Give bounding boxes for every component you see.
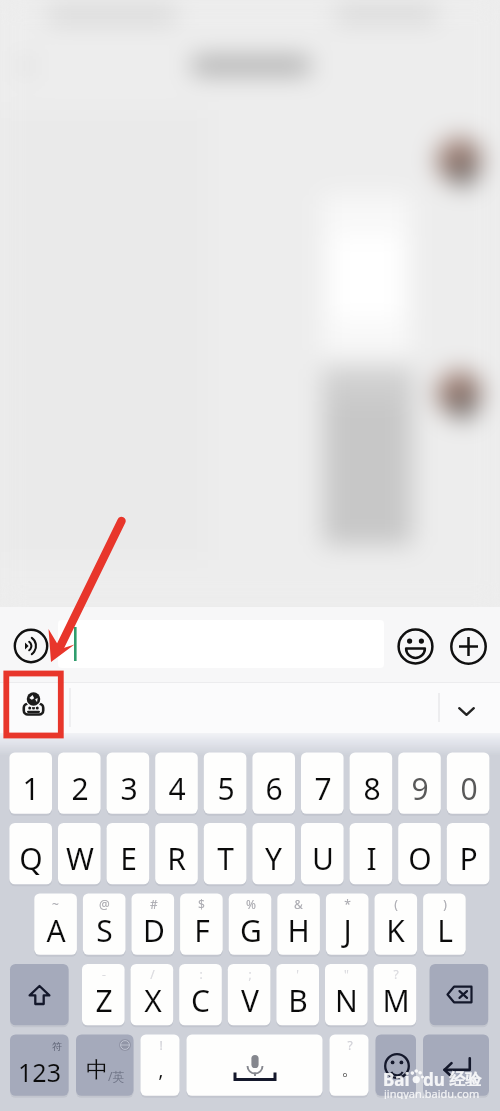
staticText: I xyxy=(366,838,377,879)
button[interactable]: 9 xyxy=(398,758,441,819)
staticText: A xyxy=(46,910,66,951)
button[interactable]: C xyxy=(179,973,222,1028)
button[interactable]: 4 xyxy=(155,758,198,819)
staticText: F xyxy=(194,910,210,951)
staticText: Bai xyxy=(383,1068,410,1086)
button[interactable]: 0 xyxy=(447,758,490,819)
button[interactable]: 8 xyxy=(350,758,393,819)
button[interactable]: P xyxy=(447,828,490,889)
button[interactable]: Chinese English toggle xyxy=(76,1045,134,1094)
staticText: : xyxy=(199,966,203,982)
staticText: R xyxy=(167,838,186,879)
button[interactable]: Voice message xyxy=(10,625,51,666)
button[interactable]: Hide keyboard xyxy=(450,695,483,728)
button[interactable]: 123 xyxy=(10,1045,69,1098)
button[interactable]: Switch input method xyxy=(17,688,49,720)
staticText: ! xyxy=(159,1037,163,1053)
staticText: Y xyxy=(265,838,282,879)
staticText: ~ xyxy=(52,896,59,912)
staticText: 3 xyxy=(120,768,138,809)
staticText: Z xyxy=(95,980,113,1021)
staticText: ' xyxy=(296,966,299,982)
staticText: Q xyxy=(19,838,43,879)
button[interactable]: 6 xyxy=(252,758,295,819)
button[interactable]: F xyxy=(180,903,223,958)
button[interactable]: 5 xyxy=(204,758,247,819)
staticText: 。 xyxy=(341,1058,359,1081)
button[interactable]: V xyxy=(228,973,271,1028)
button[interactable]: U xyxy=(301,828,344,889)
staticText: D xyxy=(143,910,165,951)
staticText: J xyxy=(343,910,352,951)
staticText: " xyxy=(344,966,349,982)
button[interactable]: H xyxy=(277,903,320,958)
staticText: 8 xyxy=(363,768,381,809)
staticText: # xyxy=(150,896,158,912)
staticText: 符 xyxy=(52,1040,62,1053)
staticText: ? xyxy=(347,1037,353,1053)
button[interactable] xyxy=(58,620,384,668)
staticText: K xyxy=(386,910,405,951)
staticText: $ xyxy=(198,896,205,912)
button[interactable]: N xyxy=(325,973,368,1028)
button[interactable]: I xyxy=(350,828,393,889)
button[interactable]: 3 xyxy=(107,758,150,819)
button[interactable]: Emoji xyxy=(394,625,436,667)
button[interactable]: B xyxy=(276,973,319,1028)
button[interactable]: Y xyxy=(252,828,295,889)
button[interactable]: J xyxy=(326,903,369,958)
staticText: 1 xyxy=(22,768,40,809)
staticText: 经验 xyxy=(445,1068,482,1086)
button[interactable]: Space xyxy=(187,1035,323,1096)
button[interactable]: 1 xyxy=(9,758,52,819)
button[interactable]: Shift xyxy=(10,964,69,1025)
staticText: V xyxy=(241,980,259,1021)
staticText: E xyxy=(120,838,137,879)
staticText: 123 xyxy=(18,1055,61,1089)
staticText: S xyxy=(96,910,113,951)
button[interactable]: Emoji keyboard xyxy=(376,1035,417,1096)
button[interactable]: 。 xyxy=(330,1045,369,1094)
staticText: - xyxy=(102,966,106,982)
button[interactable]: R xyxy=(155,828,198,889)
button[interactable]: D xyxy=(132,903,175,958)
staticText: 9 xyxy=(411,768,429,809)
staticText: H xyxy=(287,910,310,951)
button[interactable]: , xyxy=(141,1045,180,1094)
button[interactable]: Q xyxy=(9,828,52,889)
staticText: O xyxy=(408,838,432,879)
staticText: ? xyxy=(393,966,399,982)
button[interactable]: X xyxy=(131,973,174,1028)
button[interactable]: A xyxy=(34,903,77,958)
staticText: * xyxy=(344,896,351,912)
staticText: ; xyxy=(248,966,252,982)
button[interactable]: M xyxy=(374,973,417,1028)
button[interactable]: W xyxy=(58,828,101,889)
button[interactable]: E xyxy=(107,828,150,889)
button[interactable]: O xyxy=(398,828,441,889)
button[interactable]: 2 xyxy=(58,758,101,819)
staticText: ( xyxy=(394,896,398,912)
button[interactable]: K xyxy=(374,903,417,958)
button[interactable]: Z xyxy=(82,973,125,1028)
staticText: L xyxy=(437,910,453,951)
button[interactable]: Enter xyxy=(423,1035,489,1096)
staticText: 7 xyxy=(314,768,332,809)
button[interactable]: S xyxy=(83,903,126,958)
staticText: , xyxy=(158,1056,164,1083)
button[interactable]: L xyxy=(423,903,466,958)
staticText: /英 xyxy=(108,1068,125,1084)
staticText: P xyxy=(459,838,478,879)
button[interactable]: More options xyxy=(447,625,489,667)
staticText: B xyxy=(288,980,308,1021)
staticText: U xyxy=(312,838,334,879)
staticText: W xyxy=(66,838,94,879)
staticText: 2 xyxy=(71,768,89,809)
staticText: jingyan.baidu.com xyxy=(384,1086,480,1099)
staticText: du xyxy=(423,1068,445,1086)
button[interactable]: 7 xyxy=(301,758,344,819)
button[interactable]: Backspace xyxy=(430,964,489,1025)
staticText: 5 xyxy=(217,768,235,809)
button[interactable]: T xyxy=(204,828,247,889)
button[interactable]: G xyxy=(229,903,272,958)
